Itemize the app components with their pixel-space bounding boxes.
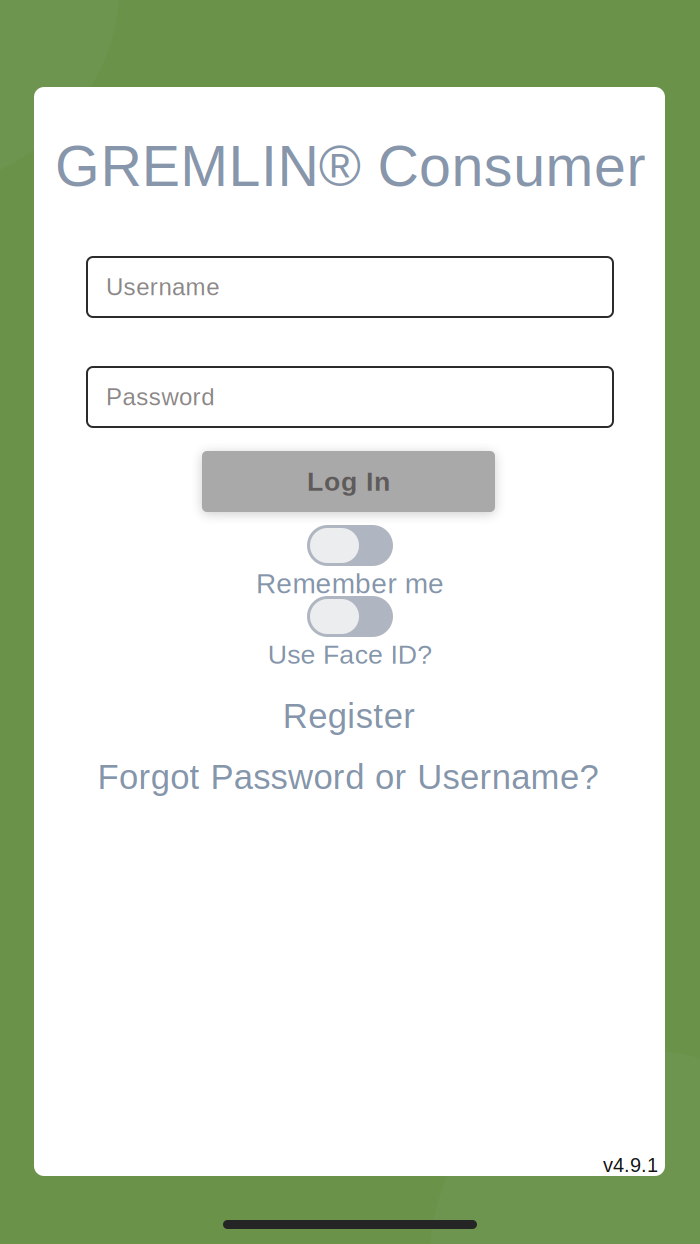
staticText: Username (106, 274, 219, 300)
staticText: GREMLIN® Consumer (55, 134, 645, 198)
button[interactable]: Register (249, 694, 449, 738)
staticText: Use Face ID? (268, 640, 432, 669)
button[interactable]: Forgot Password or Username? (88, 755, 608, 799)
staticText: Log In (307, 467, 390, 496)
staticText: Forgot Password or Username? (98, 758, 598, 796)
button[interactable]: Remember me (200, 525, 500, 594)
button[interactable]: Use Face ID? (200, 596, 500, 665)
button[interactable]: Log In (202, 451, 495, 512)
button[interactable]: Password (87, 367, 613, 427)
button[interactable]: Username (87, 257, 613, 317)
staticText: Password (106, 384, 214, 410)
staticText: Register (283, 697, 415, 735)
staticText: v4.9.1 (603, 1154, 658, 1176)
staticText: Remember me (256, 568, 444, 599)
